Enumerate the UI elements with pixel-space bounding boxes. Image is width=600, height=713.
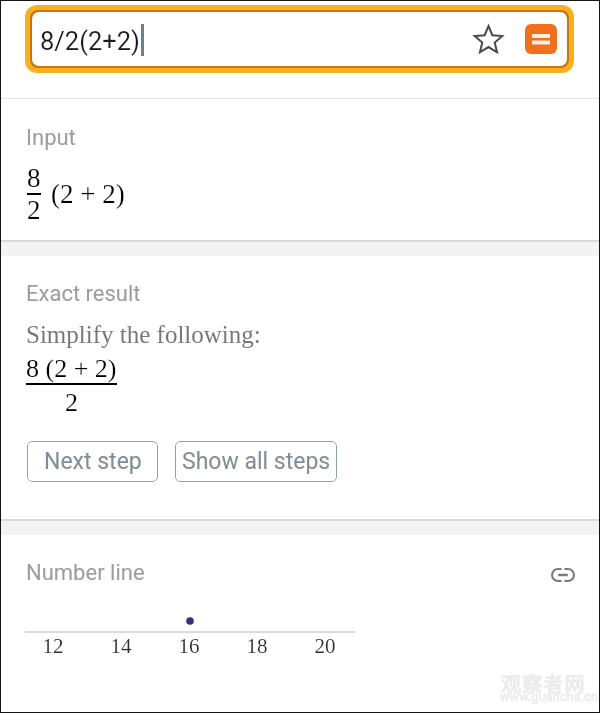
staticText: (2 + 2): [51, 179, 125, 209]
button[interactable]: Next step: [27, 441, 158, 482]
button[interactable]: Compute: [525, 24, 557, 54]
button[interactable]: 8/2(2+2): [32, 12, 567, 66]
staticText: 8: [27, 163, 41, 193]
staticText: Show all steps: [182, 448, 331, 475]
staticText: 2: [65, 388, 78, 417]
staticText: Simplify the following:: [26, 321, 261, 349]
staticText: 12: [23, 634, 83, 657]
staticText: 18: [227, 634, 287, 657]
staticText: 8/2(2+2): [40, 26, 140, 56]
staticText: Exact result: [26, 281, 141, 307]
staticText: 2: [27, 195, 41, 225]
staticText: Next step: [44, 448, 142, 475]
staticText: 16: [159, 634, 219, 657]
staticText: www.guancha.cn: [500, 689, 599, 704]
staticText: 8 (2 + 2): [26, 354, 117, 383]
button[interactable]: Copy link: [547, 559, 579, 591]
staticText: 20: [295, 634, 355, 657]
button[interactable]: Show all steps: [175, 441, 337, 482]
staticText: Input: [26, 125, 76, 151]
staticText: 14: [91, 634, 151, 657]
button[interactable]: Add to favourites: [467, 18, 509, 60]
staticText: 观察者网: [501, 669, 586, 698]
staticText: Number line: [26, 560, 145, 586]
